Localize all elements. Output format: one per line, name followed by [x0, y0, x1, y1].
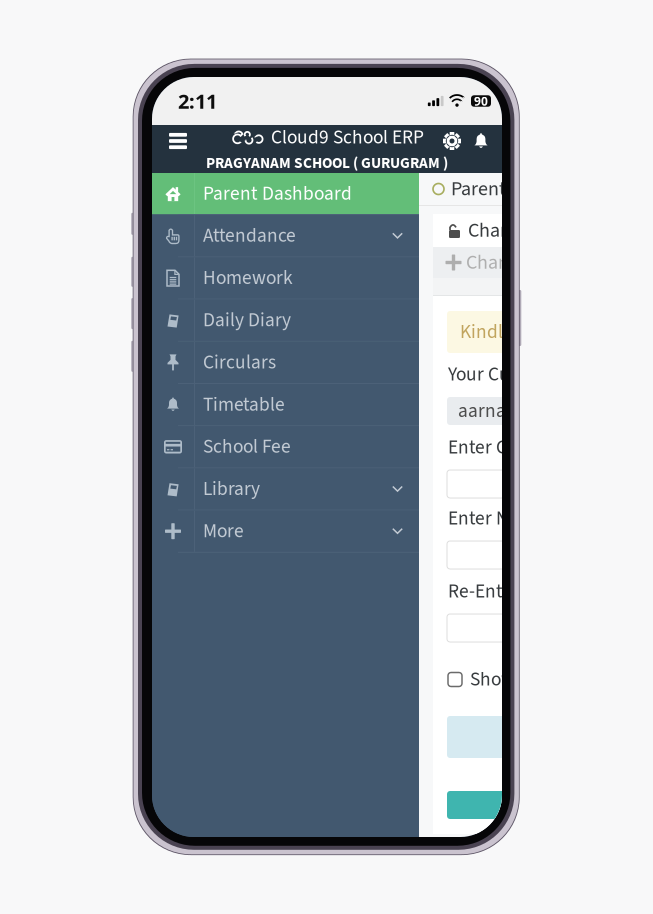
staticText: Parent Dashboard — [203, 180, 352, 207]
staticText: Library — [203, 475, 260, 503]
button[interactable]: Attendance — [152, 215, 419, 256]
staticText: Circulars — [203, 349, 276, 376]
staticText: Daily Diary — [203, 306, 291, 334]
staticText: Homework — [203, 264, 293, 292]
button[interactable]: Menu — [158, 126, 198, 156]
staticText: Attendance — [203, 222, 296, 249]
staticText: aarna9911 — [458, 397, 546, 425]
staticText: 90 — [474, 93, 488, 109]
button[interactable]: Settings — [440, 128, 464, 154]
staticText: 2:11 — [178, 88, 217, 114]
button[interactable]: Parent Dashboard — [152, 173, 419, 214]
staticText: Enter New Password — [448, 505, 615, 532]
button[interactable]: Circulars — [152, 342, 419, 383]
staticText: Show Password — [470, 666, 597, 693]
staticText: Cloud9 School ERP — [271, 124, 424, 151]
staticText: Parent Dashboard — [451, 175, 601, 203]
staticText: Change Password — [468, 216, 614, 245]
button[interactable]: Library — [152, 468, 419, 510]
staticText: Kindly create strong password — [460, 318, 653, 346]
button[interactable]: More — [152, 511, 419, 552]
button[interactable]: Daily Diary — [152, 300, 419, 341]
staticText: Change Mobile No. — [466, 248, 623, 277]
button[interactable]: Notifications — [470, 128, 492, 154]
staticText: Timetable — [203, 391, 285, 418]
staticText: Re-Enter New Password — [448, 578, 642, 605]
staticText: Your Current User Id — [448, 361, 613, 388]
button[interactable]: Homework — [152, 257, 419, 299]
staticText: More — [203, 517, 244, 545]
staticText: Enter Current Password — [448, 434, 642, 461]
button[interactable]: School Fee — [152, 426, 419, 467]
staticText: PRAGYANAM SCHOOL ( GURUGRAM ) — [206, 152, 448, 174]
staticText: School Fee — [203, 433, 291, 460]
button[interactable]: Timetable — [152, 384, 419, 425]
